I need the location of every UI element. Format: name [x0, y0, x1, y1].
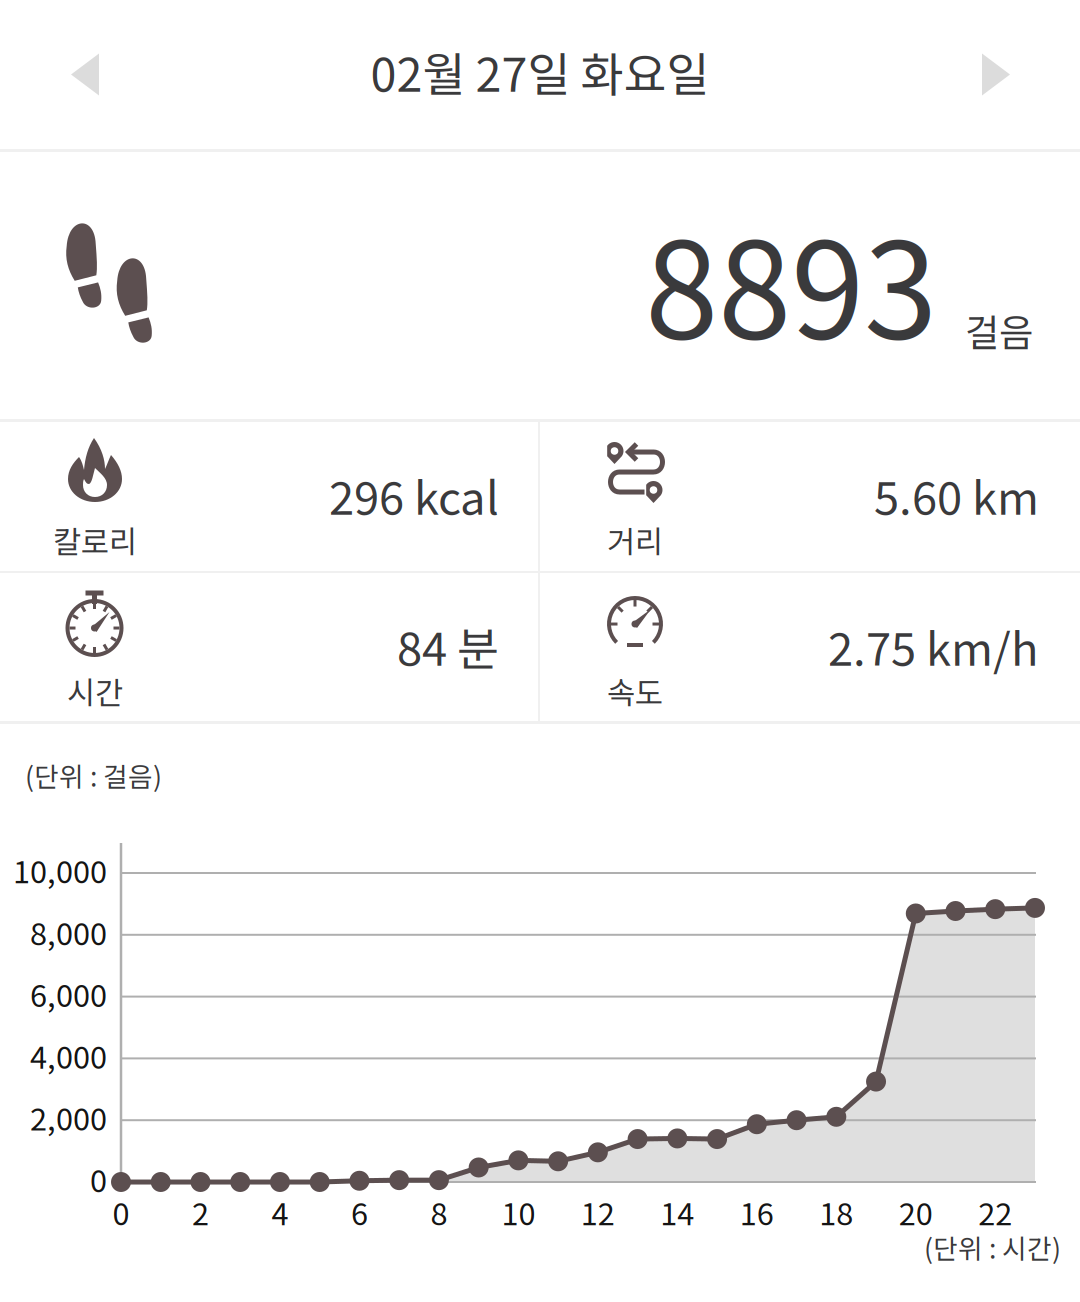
staticText: 2,000: [30, 1095, 107, 1139]
staticText: 칼로리: [53, 518, 137, 562]
staticText: 20: [899, 1190, 933, 1234]
staticText: 5.60 km: [874, 462, 1039, 528]
staticText: 2.75 km/h: [828, 613, 1039, 679]
staticText: 4: [271, 1190, 288, 1234]
staticText: 시간: [67, 669, 123, 713]
staticText: 0: [90, 1157, 107, 1201]
staticText: 22: [978, 1190, 1012, 1234]
staticText: (단위 : 시간): [924, 1228, 1061, 1266]
staticText: 8893: [645, 185, 937, 376]
staticText: 4,000: [30, 1033, 107, 1078]
staticText: (단위 : 걸음): [25, 756, 162, 794]
staticText: 14: [660, 1190, 694, 1234]
staticText: 6: [351, 1190, 368, 1234]
button[interactable]: Next day: [904, 0, 1080, 149]
staticText: 8: [430, 1190, 447, 1234]
staticText: 18: [819, 1190, 853, 1234]
staticText: 거리: [607, 518, 663, 562]
staticText: 84 분: [397, 613, 499, 679]
button[interactable]: Previous day: [0, 0, 176, 149]
staticText: 16: [740, 1190, 774, 1234]
staticText: 걸음: [965, 303, 1033, 357]
staticText: 6,000: [30, 971, 107, 1016]
staticText: 10,000: [13, 848, 107, 892]
staticText: 2: [192, 1190, 209, 1234]
staticText: 12: [581, 1190, 615, 1234]
staticText: 0: [112, 1190, 129, 1234]
staticText: 10: [501, 1190, 535, 1234]
staticText: 296 kcal: [329, 462, 499, 528]
staticText: 8,000: [30, 910, 107, 954]
staticText: 02월 27일 화요일: [370, 38, 709, 105]
staticText: 속도: [607, 669, 663, 713]
